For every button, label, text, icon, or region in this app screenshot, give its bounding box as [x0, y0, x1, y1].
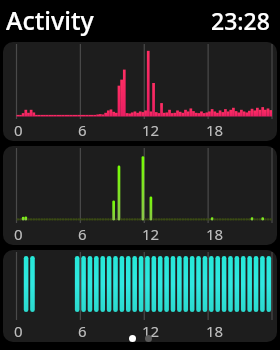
- staticText: 0: [14, 120, 23, 140]
- staticText: 23:28: [211, 5, 270, 36]
- staticText: 18: [206, 321, 224, 341]
- staticText: 18: [206, 120, 224, 140]
- staticText: 6: [78, 224, 87, 244]
- button[interactable]: Sleep chart: [3, 250, 277, 342]
- button[interactable]: Heart rate activity chart: [3, 42, 277, 141]
- staticText: 6: [78, 321, 87, 341]
- staticText: 12: [142, 120, 160, 140]
- staticText: 0: [14, 224, 23, 244]
- staticText: Activity: [6, 3, 94, 37]
- staticText: 12: [142, 321, 160, 341]
- button[interactable]: Move minutes chart: [3, 146, 277, 245]
- staticText: 12: [142, 224, 160, 244]
- staticText: 0: [14, 321, 23, 341]
- staticText: 6: [78, 120, 87, 140]
- staticText: 18: [206, 224, 224, 244]
